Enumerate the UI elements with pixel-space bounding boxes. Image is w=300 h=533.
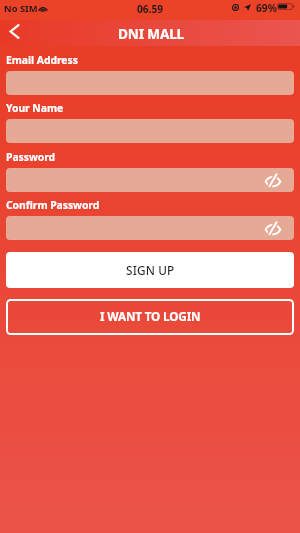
staticText: No SIM [4, 2, 38, 15]
button[interactable]: Toggle password visibility [264, 171, 282, 189]
staticText: Confirm Password [6, 198, 100, 212]
staticText: Password [6, 150, 56, 164]
button[interactable]: Toggle password visibility [264, 219, 282, 237]
button[interactable]: Back [0, 18, 28, 44]
button[interactable]: SIGN UP [6, 252, 294, 288]
staticText: DNI MALL [118, 24, 185, 43]
button[interactable]: Toggle password visibility [6, 168, 294, 192]
button[interactable] [6, 71, 294, 95]
staticText: Email Address [6, 53, 78, 67]
staticText: Your Name [6, 101, 64, 115]
staticText: SIGN UP [126, 262, 175, 278]
staticText: 06.59 [137, 2, 164, 16]
button[interactable] [6, 119, 294, 143]
staticText: 69% [256, 1, 277, 15]
button[interactable]: I WANT TO LOGIN [6, 299, 294, 335]
staticText: I WANT TO LOGIN [100, 308, 201, 324]
button[interactable]: Toggle password visibility [6, 216, 294, 240]
